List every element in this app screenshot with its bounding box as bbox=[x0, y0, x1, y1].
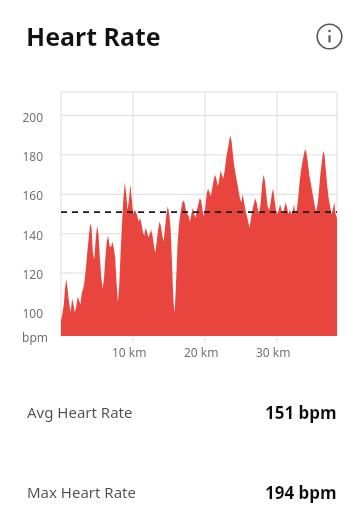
staticText: 20 km bbox=[184, 344, 219, 360]
staticText: 10 km bbox=[112, 344, 147, 360]
button[interactable]: Information bbox=[314, 21, 344, 51]
staticText: 160 bbox=[22, 187, 43, 203]
staticText: 194 bpm bbox=[265, 481, 337, 504]
staticText: 30 km bbox=[256, 344, 291, 360]
staticText: Avg Heart Rate bbox=[27, 402, 133, 422]
button[interactable]: Max Heart Rate bbox=[0, 475, 364, 509]
staticText: 140 bbox=[22, 227, 43, 243]
button[interactable]: Avg Heart Rate bbox=[0, 395, 364, 429]
staticText: bpm bbox=[22, 329, 48, 345]
staticText: 120 bbox=[22, 266, 43, 282]
staticText: 180 bbox=[22, 148, 43, 164]
staticText: Max Heart Rate bbox=[27, 482, 136, 502]
staticText: Heart Rate bbox=[26, 19, 161, 53]
staticText: 151 bpm bbox=[265, 401, 337, 424]
staticText: 200 bbox=[22, 109, 43, 125]
staticText: 100 bbox=[22, 305, 43, 321]
